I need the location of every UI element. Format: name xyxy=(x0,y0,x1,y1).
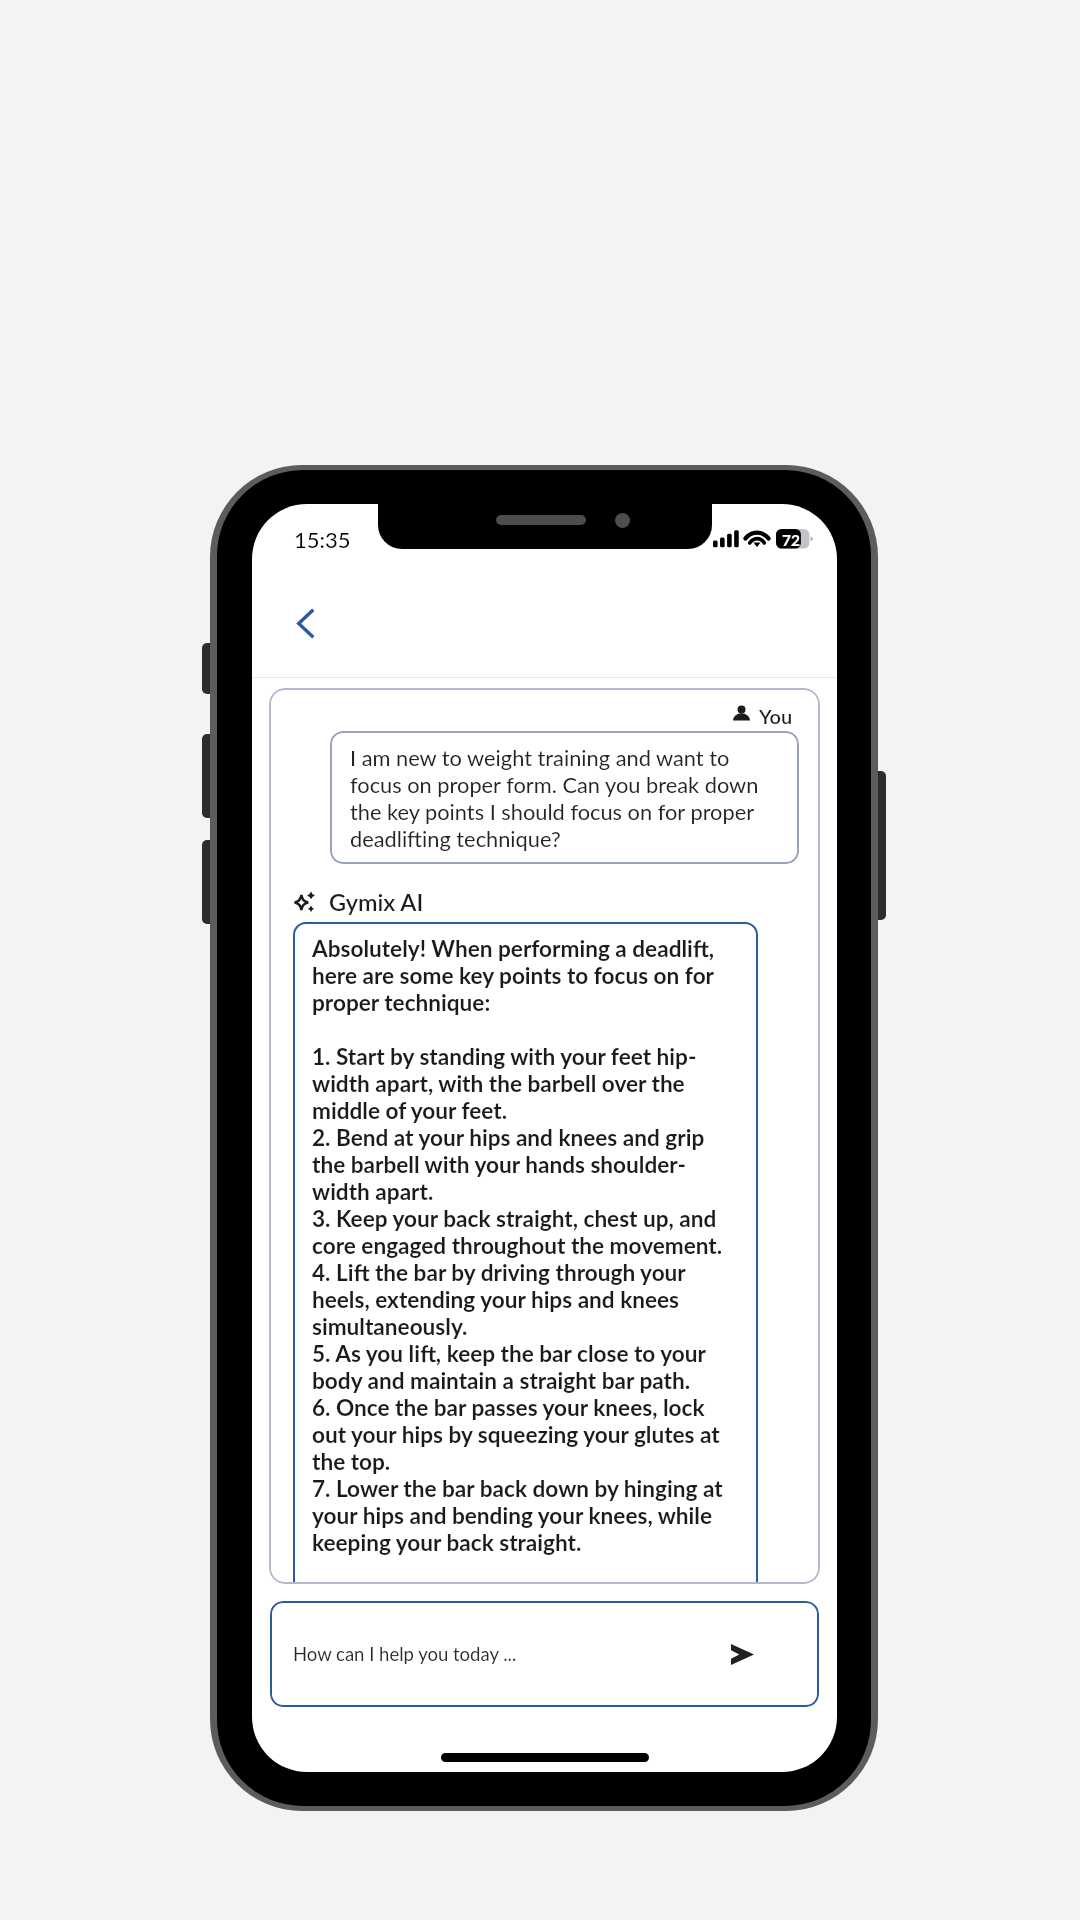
staticText: Absolutely! When performing a deadlift, … xyxy=(312,935,728,1556)
staticText: I am new to weight training and want to … xyxy=(350,744,762,852)
button[interactable]: Send xyxy=(725,1637,759,1671)
staticText: Gymix AI xyxy=(329,888,424,916)
staticText: You xyxy=(759,704,793,728)
button[interactable]: Back xyxy=(283,602,316,650)
staticText: 72 xyxy=(782,531,800,550)
staticText: 15:35 xyxy=(294,526,351,552)
button[interactable]: You xyxy=(729,702,819,730)
button[interactable]: How can I help you today ... xyxy=(270,1601,819,1707)
staticText: How can I help you today ... xyxy=(293,1643,517,1665)
button[interactable]: Gymix AI xyxy=(295,886,475,916)
